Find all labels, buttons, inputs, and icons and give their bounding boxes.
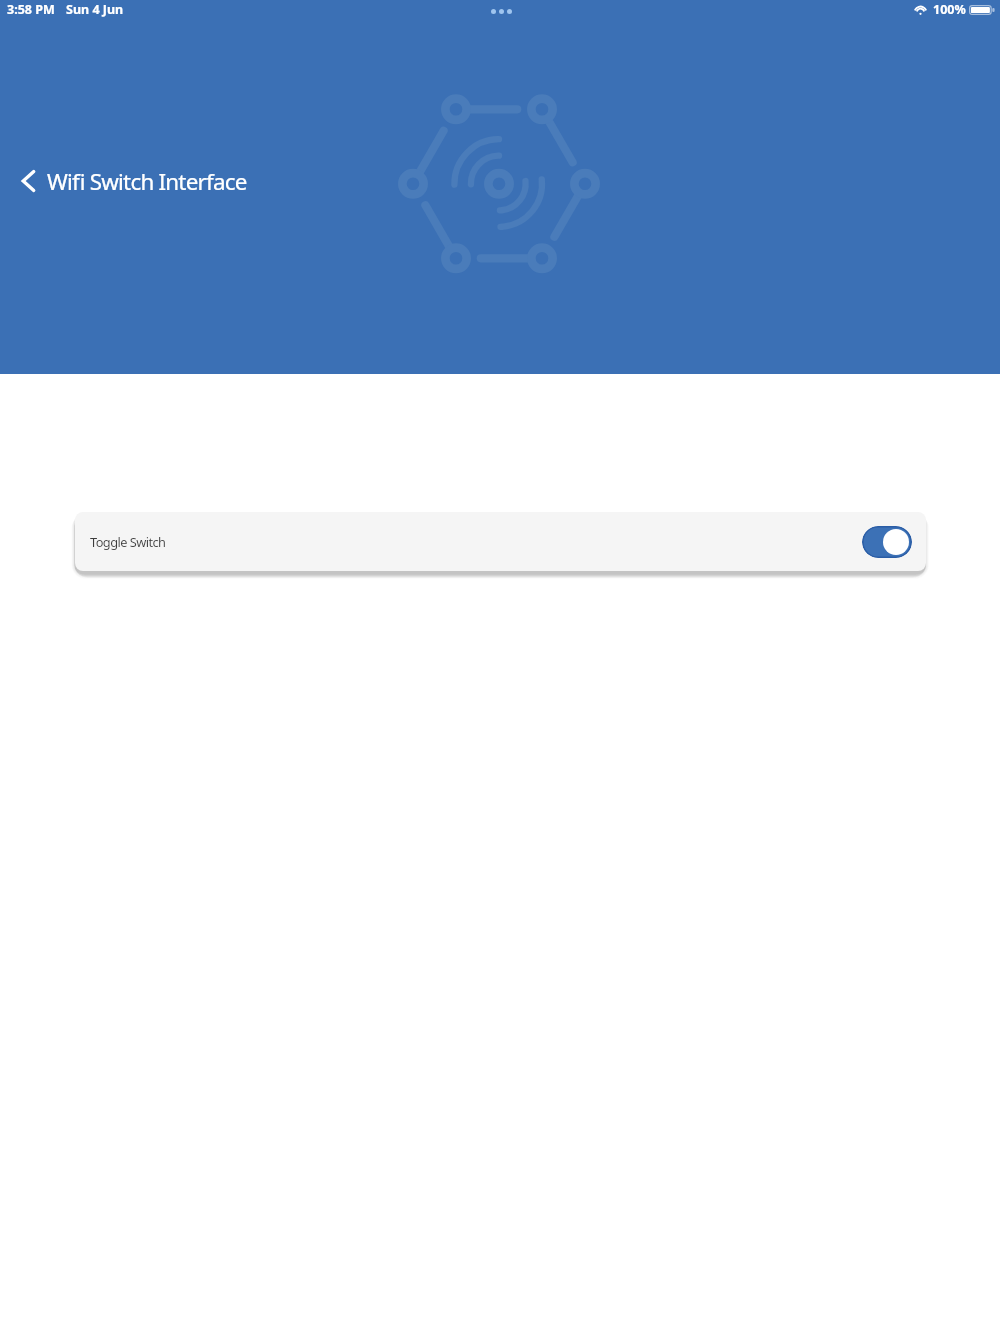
staticText: 3:58 PM [7,1,55,18]
staticText: Wifi Switch Interface [47,166,247,197]
staticText: 100% [933,1,966,18]
staticText: Sun 4 Jun [66,1,124,18]
button[interactable]: Toggle Switch, on [862,526,912,558]
staticText: Toggle Switch [90,533,166,550]
button[interactable]: Back [9,159,47,203]
button[interactable]: Toggle Switch [75,512,926,571]
